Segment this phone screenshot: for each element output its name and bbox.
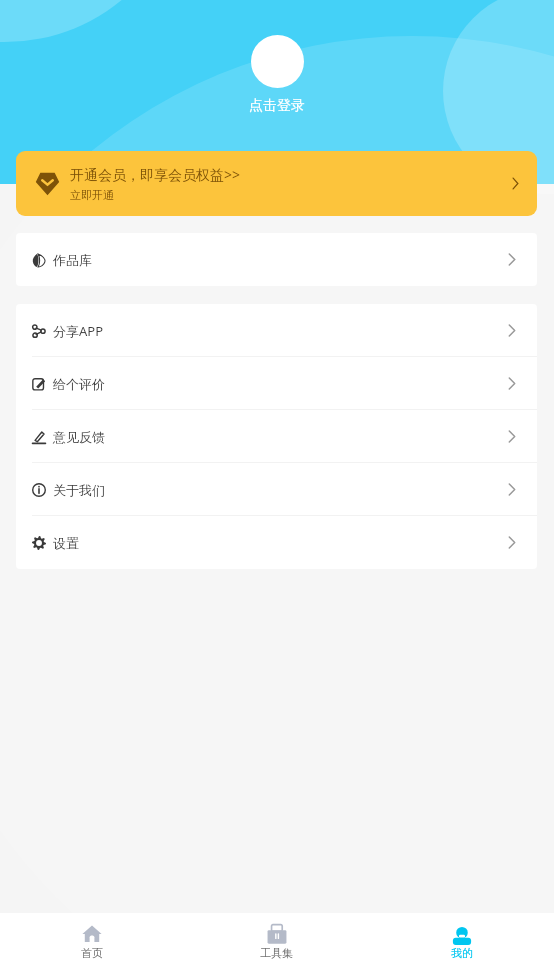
button[interactable]: 首页: [0, 913, 184, 969]
button[interactable]: 我的: [369, 913, 554, 969]
staticText: 设置: [53, 535, 79, 551]
staticText: 作品库: [53, 252, 92, 268]
staticText: 意见反馈: [53, 429, 105, 445]
button[interactable]: 工具集: [184, 913, 369, 969]
staticText: 工具集: [260, 946, 293, 960]
button[interactable]: 作品库: [16, 233, 537, 286]
staticText: 分享APP: [53, 322, 104, 340]
button[interactable]: 开通会员，即享会员权益>>: [16, 151, 537, 216]
button[interactable]: 设置: [16, 516, 537, 569]
staticText: 首页: [81, 946, 103, 960]
button[interactable]: 关于我们: [16, 463, 537, 516]
staticText: 点击登录: [249, 97, 305, 115]
staticText: 给个评价: [53, 376, 105, 392]
button[interactable]: 意见反馈: [16, 410, 537, 463]
button[interactable]: Avatar: [251, 35, 304, 88]
staticText: 立即开通: [70, 188, 114, 202]
staticText: 我的: [451, 946, 473, 960]
button[interactable]: 分享APP: [16, 304, 537, 357]
staticText: 关于我们: [53, 482, 105, 498]
button[interactable]: 点击登录: [249, 97, 305, 115]
button[interactable]: 给个评价: [16, 357, 537, 410]
staticText: 开通会员，即享会员权益>>: [70, 165, 241, 184]
